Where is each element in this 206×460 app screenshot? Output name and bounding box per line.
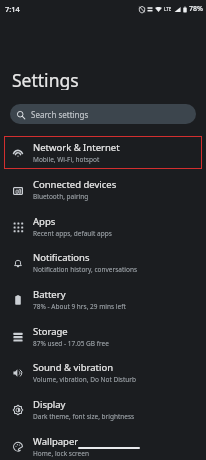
button[interactable]: Wallpaper xyxy=(0,428,206,460)
button[interactable]: Apps xyxy=(0,208,206,244)
staticText: Notifications xyxy=(33,251,90,264)
staticText: Notification history, conversations xyxy=(33,265,138,274)
staticText: Settings xyxy=(12,68,79,90)
staticText: Network & Internet xyxy=(33,141,120,154)
staticText: Search settings xyxy=(31,109,89,120)
button[interactable]: Notifications xyxy=(0,244,206,280)
staticText: Storage xyxy=(33,325,68,338)
staticText: Battery xyxy=(33,288,66,301)
staticText: Dark theme, font size, brightness xyxy=(33,412,135,421)
button[interactable]: Connected devices xyxy=(0,171,206,207)
button[interactable]: Battery xyxy=(0,281,206,317)
button[interactable]: Storage xyxy=(0,318,206,354)
staticText: Sound & vibration xyxy=(33,361,114,374)
staticText: Volume, vibration, Do Not Disturb xyxy=(33,375,137,384)
button[interactable]: Display xyxy=(0,391,206,427)
staticText: 78% - About 9 hrs, 29 mins left xyxy=(33,302,126,311)
staticText: 87% used - 17.05 GB free xyxy=(33,339,109,348)
button[interactable]: Search settings xyxy=(10,104,196,124)
button[interactable]: Network & Internet xyxy=(0,134,206,170)
staticText: Apps xyxy=(33,215,56,228)
button[interactable]: Sound & vibration xyxy=(0,354,206,390)
staticText: LTE xyxy=(164,6,172,12)
staticText: Home, lock screen xyxy=(33,449,89,458)
staticText: 78% xyxy=(189,4,203,14)
staticText: Bluetooth, pairing xyxy=(33,192,89,201)
staticText: Recent apps, default apps xyxy=(33,229,112,238)
staticText: Mobile, Wi-Fi, hotspot xyxy=(33,155,100,164)
staticText: 7:14 xyxy=(5,4,20,14)
staticText: Connected devices xyxy=(33,178,117,191)
staticText: Display xyxy=(33,398,66,411)
staticText: Wallpaper xyxy=(33,435,79,448)
